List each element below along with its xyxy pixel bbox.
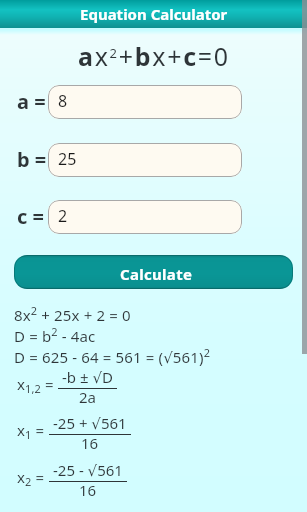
staticText: D = b2 - 4ac xyxy=(14,324,96,346)
staticText: c = xyxy=(17,203,44,230)
staticText: 25 xyxy=(58,148,77,170)
staticText: b = xyxy=(17,146,47,173)
staticText: 16 xyxy=(81,433,99,453)
staticText: D = 625 - 64 = 561 = (√561)2 xyxy=(14,345,211,367)
staticText: x2 = xyxy=(17,467,45,489)
staticText: 8 xyxy=(58,90,68,112)
button[interactable]: Calculate xyxy=(14,255,293,289)
staticText: x1 = xyxy=(17,420,45,442)
button[interactable]: 2 xyxy=(48,200,242,234)
staticText: 2 xyxy=(58,205,68,227)
staticText: 8x2 + 25x + 2 = 0 xyxy=(14,303,131,325)
staticText: Equation Calculator xyxy=(80,4,228,24)
staticText: 16 xyxy=(79,480,97,500)
staticText: -25 + √561 xyxy=(53,413,127,433)
staticText: -b ± √D xyxy=(62,367,113,387)
button[interactable]: 25 xyxy=(48,143,242,177)
button[interactable]: 8 xyxy=(48,85,242,119)
staticText: -25 - √561 xyxy=(53,460,123,480)
staticText: Calculate xyxy=(120,264,193,284)
staticText: a = xyxy=(17,88,46,115)
staticText: x1,2 = xyxy=(17,374,54,396)
staticText: 2a xyxy=(79,387,96,407)
staticText: ax2+bx+c=0 xyxy=(78,39,230,73)
